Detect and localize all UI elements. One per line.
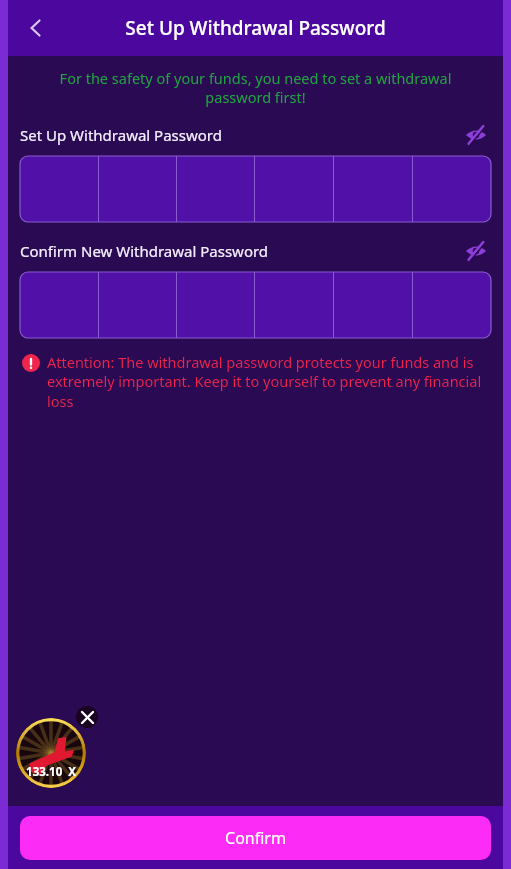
button[interactable] (20, 156, 491, 222)
staticText: Attention: The withdrawal password prote… (47, 352, 487, 412)
staticText: Set Up Withdrawal Password (20, 125, 461, 145)
button[interactable] (20, 272, 491, 338)
button[interactable]: Close (76, 706, 98, 728)
button[interactable]: Aviator game (16, 718, 86, 788)
staticText: For the safety of your funds, you need t… (26, 68, 485, 108)
staticText: Confirm New Withdrawal Password (20, 241, 461, 261)
button[interactable]: Back (14, 6, 58, 50)
button[interactable]: Confirm (20, 816, 491, 860)
staticText: Set Up Withdrawal Password (8, 15, 503, 41)
staticText: 133.10 X (26, 764, 76, 780)
button[interactable]: Show password (461, 122, 491, 148)
button[interactable]: Show password (461, 238, 491, 264)
staticText: Confirm (225, 827, 286, 849)
